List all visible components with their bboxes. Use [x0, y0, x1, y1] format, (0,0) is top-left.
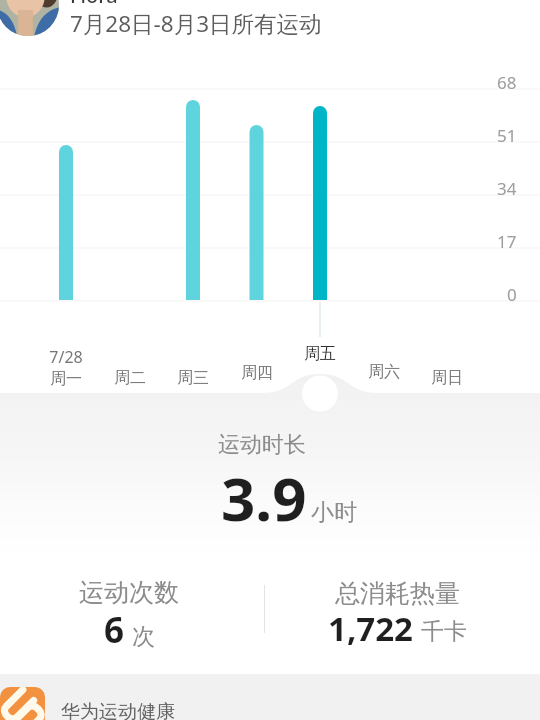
staticText: 千卡 — [421, 617, 467, 646]
staticText: 次 — [132, 622, 155, 651]
staticText: 小时 — [311, 498, 357, 527]
staticText: 7/28 — [49, 346, 83, 368]
staticText: 1,722 — [328, 606, 413, 651]
staticText: 34 — [497, 177, 517, 200]
staticText: 0 — [507, 283, 517, 306]
staticText: 68 — [497, 71, 517, 94]
button[interactable]: User avatar — [0, 0, 59, 36]
staticText: 周三 — [177, 368, 209, 388]
staticText: Flora — [70, 0, 118, 9]
staticText: 周五 — [304, 344, 336, 364]
staticText: 17 — [497, 230, 517, 253]
staticText: 51 — [497, 124, 517, 147]
staticText: 6 — [104, 606, 125, 654]
staticText: 周二 — [114, 368, 146, 388]
staticText: 周一 — [50, 369, 82, 389]
staticText: 华为运动健康 — [61, 700, 175, 720]
staticText: 周六 — [368, 362, 400, 382]
button[interactable]: 华为运动健康 — [0, 687, 45, 720]
staticText: 运动次数 — [79, 577, 179, 608]
staticText: 总消耗热量 — [335, 578, 460, 609]
staticText: 周四 — [241, 363, 273, 383]
staticText: 运动时长 — [218, 431, 306, 459]
staticText: 7月28日-8月3日所有运动 — [70, 8, 322, 39]
staticText: 3.9 — [221, 457, 307, 539]
staticText: 周日 — [431, 368, 463, 388]
